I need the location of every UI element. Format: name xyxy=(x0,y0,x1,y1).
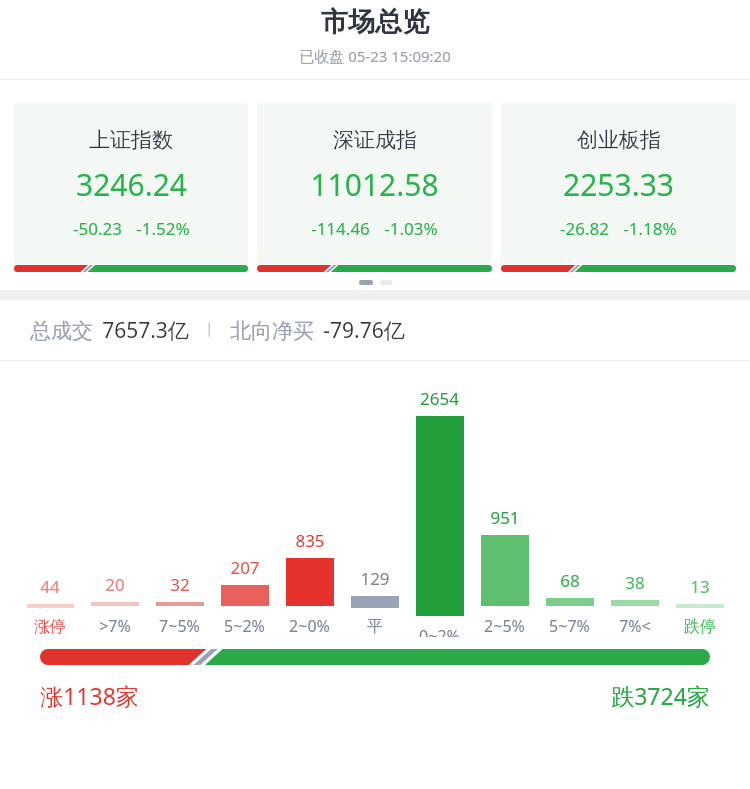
button[interactable]: 951 xyxy=(472,387,537,637)
staticText: 68 xyxy=(560,569,580,592)
staticText: 2~5% xyxy=(484,615,525,637)
staticText: 平 xyxy=(367,617,383,637)
staticText: 深证成指 xyxy=(333,127,417,153)
staticText: 市场总览 xyxy=(321,5,429,39)
staticText: 涨1138家 xyxy=(40,680,139,711)
staticText: 129 xyxy=(360,567,390,590)
staticText: 2253.33 xyxy=(563,164,674,205)
button[interactable]: 38 xyxy=(602,387,667,637)
staticText: -1.03% xyxy=(384,217,438,240)
staticText: 5~7% xyxy=(549,615,590,637)
staticText: 32 xyxy=(170,573,190,596)
staticText: 0~2% xyxy=(419,625,460,637)
staticText: 11012.58 xyxy=(310,164,439,205)
staticText: >7% xyxy=(99,615,131,637)
button[interactable]: 32 xyxy=(147,387,212,637)
button[interactable]: 129 xyxy=(342,387,407,637)
staticText: 已收盘 05-23 15:09:20 xyxy=(299,46,451,66)
staticText: -1.52% xyxy=(136,217,190,240)
staticText: 5~2% xyxy=(224,615,265,637)
staticText: 207 xyxy=(230,556,260,579)
button[interactable]: 207 xyxy=(212,387,277,637)
button[interactable]: 深证成指 xyxy=(257,103,492,272)
staticText: 20 xyxy=(105,573,125,596)
staticText: 北向净买 xyxy=(230,318,314,344)
staticText: 7%< xyxy=(619,615,651,637)
staticText: 44 xyxy=(40,575,60,598)
staticText: 13 xyxy=(690,575,710,598)
staticText: -50.23 xyxy=(73,217,122,240)
staticText: -79.76亿 xyxy=(323,316,405,345)
button[interactable]: 44 xyxy=(18,387,82,637)
staticText: 跌停 xyxy=(684,617,716,637)
button[interactable]: 68 xyxy=(537,387,602,637)
button[interactable]: 13 xyxy=(667,387,732,637)
button[interactable]: 835 xyxy=(277,387,342,637)
staticText: 上证指数 xyxy=(89,127,173,153)
button[interactable]: 20 xyxy=(82,387,147,637)
button[interactable]: 总成交 xyxy=(0,300,750,360)
staticText: 总成交 xyxy=(30,318,93,344)
button[interactable]: 创业板指 xyxy=(501,103,736,272)
staticText: 2654 xyxy=(420,387,459,410)
staticText: 835 xyxy=(295,529,325,552)
staticText: -1.18% xyxy=(623,217,677,240)
staticText: 2~0% xyxy=(289,615,330,637)
staticText: 3246.24 xyxy=(76,164,187,205)
staticText: 跌3724家 xyxy=(611,680,710,711)
staticText: 7657.3亿 xyxy=(102,316,189,345)
staticText: 丨 xyxy=(202,321,217,340)
staticText: 38 xyxy=(625,571,645,594)
staticText: 涨停 xyxy=(34,617,66,637)
staticText: -114.46 xyxy=(311,217,370,240)
staticText: 951 xyxy=(490,506,520,529)
button[interactable]: 上证指数 xyxy=(14,103,248,272)
staticText: -26.82 xyxy=(560,217,609,240)
staticText: 7~5% xyxy=(159,615,200,637)
button[interactable]: 2654 xyxy=(407,387,472,637)
staticText: 创业板指 xyxy=(577,127,661,153)
